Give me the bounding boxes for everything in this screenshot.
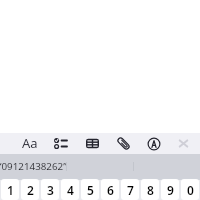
- button[interactable]: Table: [81, 133, 103, 154]
- button[interactable]: 5: [81, 179, 99, 200]
- staticText: Aa: [22, 134, 38, 152]
- staticText: 0: [187, 182, 194, 198]
- button[interactable]: Bulleted list: [49, 133, 71, 154]
- button[interactable]: Text format: [19, 133, 41, 154]
- button[interactable]: 7: [121, 179, 139, 200]
- button[interactable]: [0, 154, 66, 178]
- button[interactable]: 6: [101, 179, 119, 200]
- button[interactable]: 3: [41, 179, 59, 200]
- staticText: 3: [47, 182, 54, 198]
- staticText: 9: [167, 182, 174, 198]
- button[interactable]: 1: [1, 179, 19, 200]
- staticText: 6: [107, 182, 114, 198]
- staticText: 2: [27, 182, 34, 198]
- button[interactable]: 4: [61, 179, 79, 200]
- staticText: 7: [127, 182, 134, 198]
- staticText: “09121438262”: [0, 160, 67, 173]
- staticText: 8: [147, 182, 154, 198]
- button[interactable]: Attach file: [112, 133, 134, 154]
- button[interactable]: 2: [21, 179, 39, 200]
- staticText: 4: [67, 182, 74, 198]
- button[interactable]: Markup: [143, 133, 165, 154]
- button[interactable]: 8: [141, 179, 159, 200]
- staticText: 5: [87, 182, 94, 198]
- button[interactable]: 0: [181, 179, 199, 200]
- button[interactable]: Close keyboard: [172, 133, 194, 154]
- staticText: 1: [7, 182, 14, 198]
- button[interactable]: 9: [161, 179, 179, 200]
